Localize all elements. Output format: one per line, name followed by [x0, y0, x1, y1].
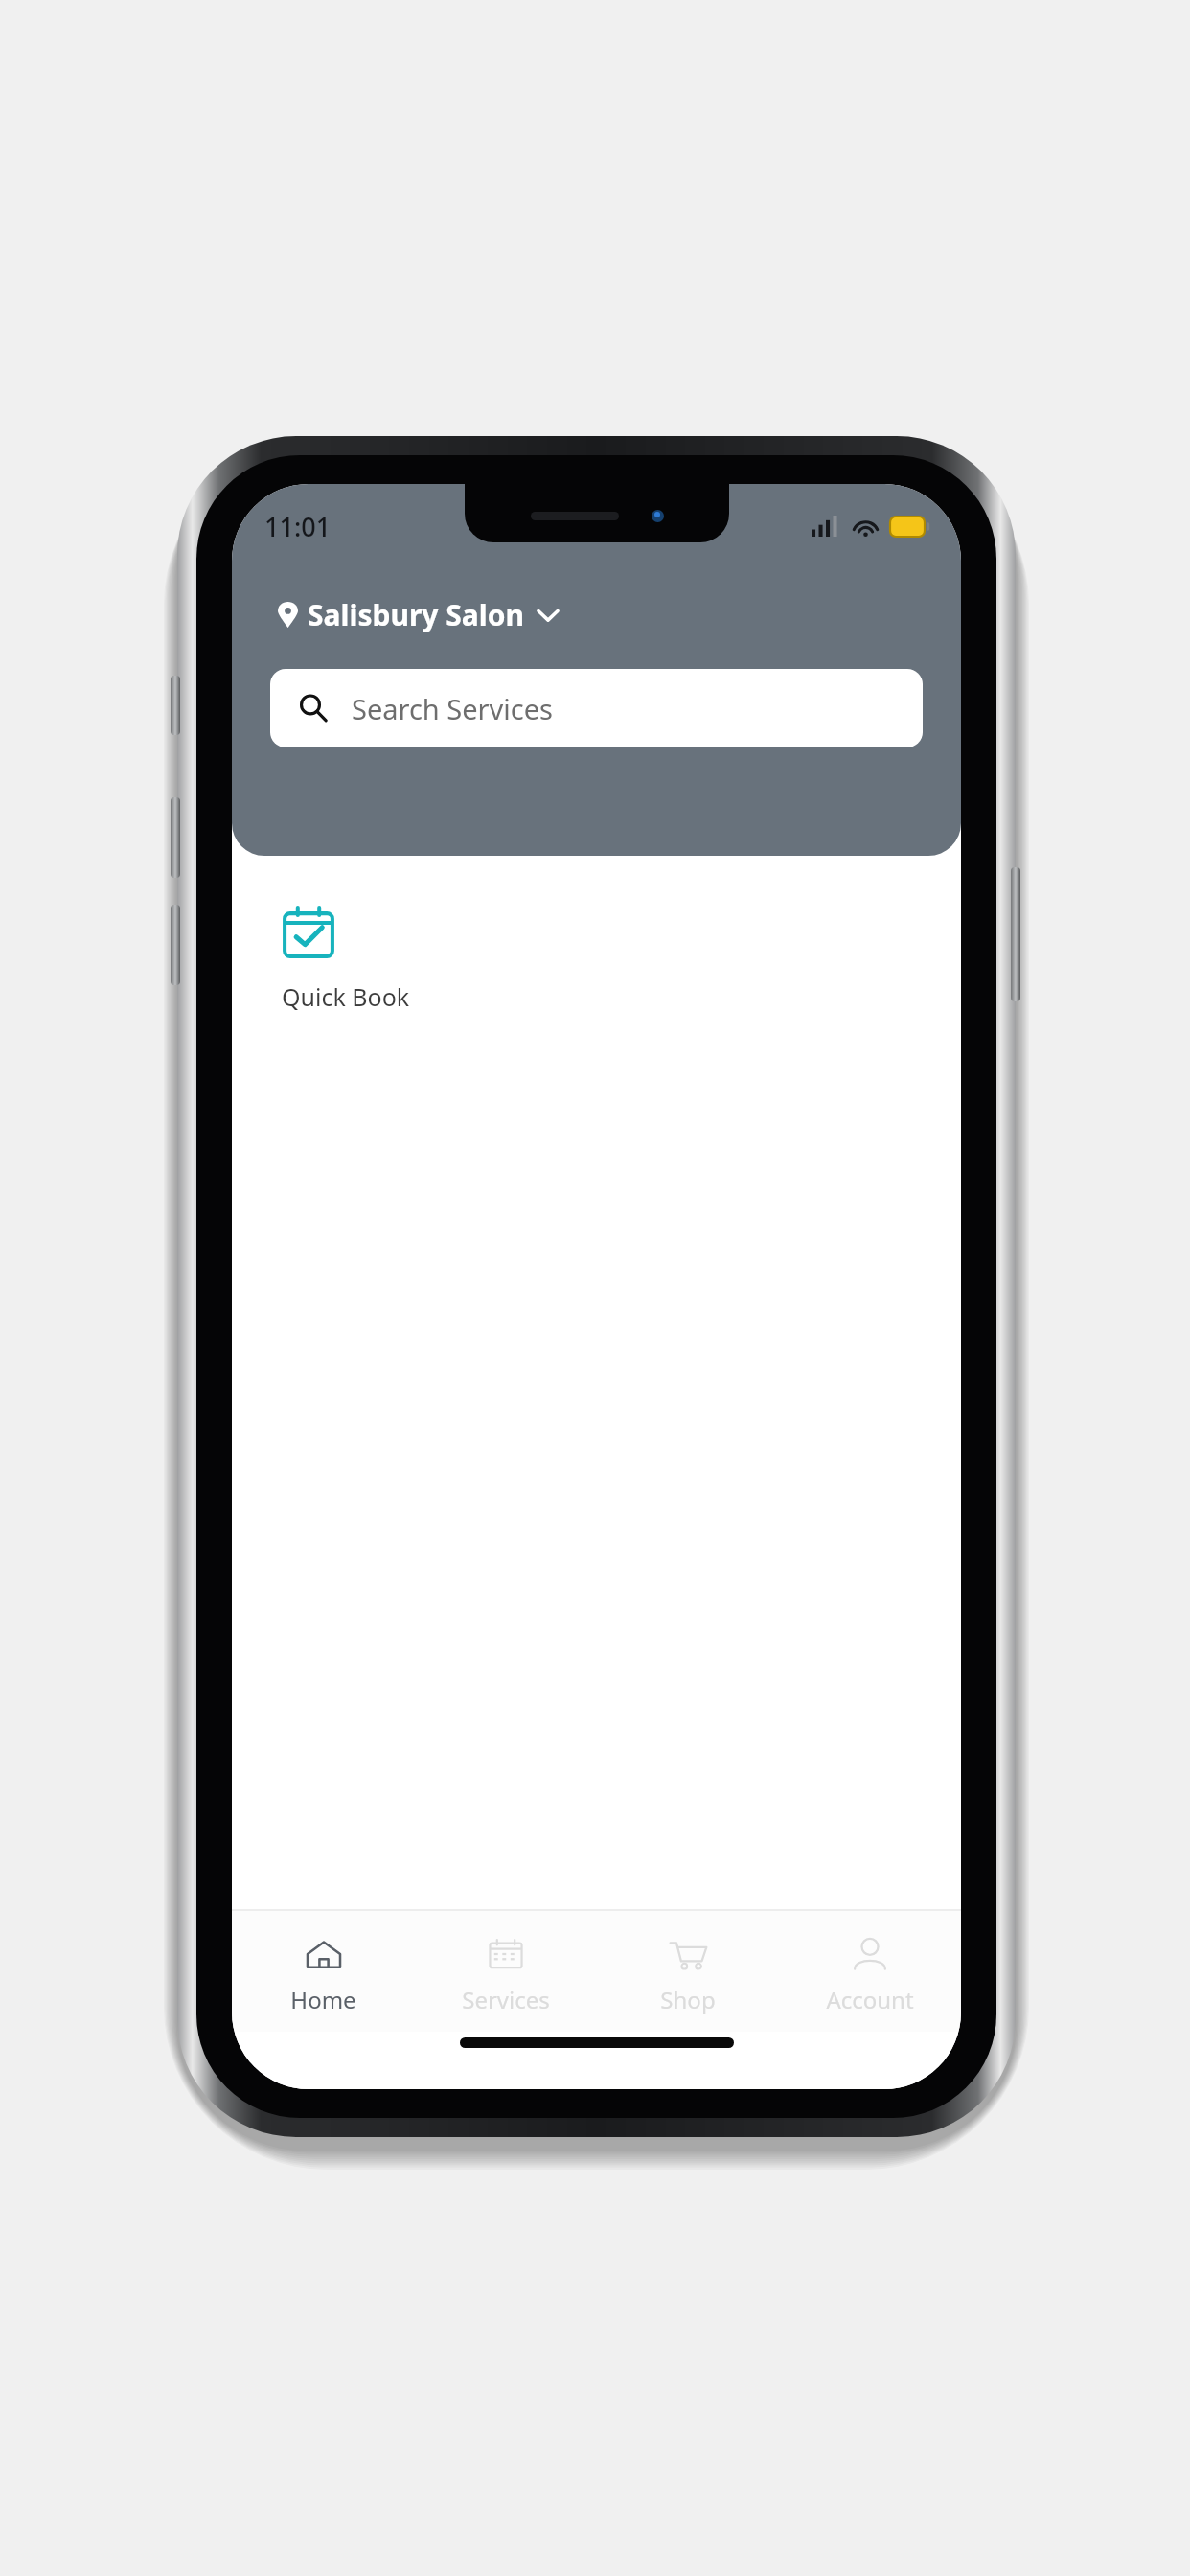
- button[interactable]: Account: [779, 1911, 961, 2032]
- staticText: Shop: [660, 1984, 716, 2015]
- staticText: Search Services: [352, 690, 553, 727]
- button[interactable]: Salisbury Salon: [274, 589, 563, 640]
- button[interactable]: Services: [415, 1911, 597, 2032]
- staticText: Salisbury Salon: [308, 595, 524, 634]
- button[interactable]: Shop: [597, 1911, 779, 2032]
- staticText: Quick Book: [282, 980, 410, 1013]
- staticText: Home: [290, 1984, 356, 2015]
- button[interactable]: Home: [232, 1911, 415, 2032]
- staticText: Services: [462, 1984, 550, 2015]
- button[interactable]: Search Services: [270, 669, 923, 747]
- button[interactable]: Quick Book: [276, 900, 416, 1019]
- staticText: Account: [826, 1984, 914, 2015]
- staticText: 11:01: [264, 509, 332, 544]
